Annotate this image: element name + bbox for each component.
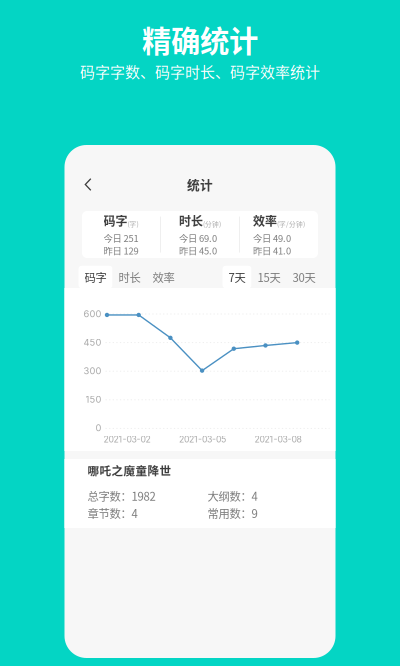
button[interactable]: 15天 (251, 266, 286, 288)
staticText: 时长 (179, 212, 203, 229)
staticText: 2021-03-05 (179, 434, 226, 445)
staticText: 30天 (292, 269, 315, 285)
staticText: 今日 49.0 (253, 231, 291, 245)
staticText: 2021-03-08 (254, 434, 301, 445)
staticText: 码字 (84, 269, 106, 285)
staticText: 哪吒之魔童降世 (87, 462, 171, 478)
staticText: (字) (127, 219, 138, 229)
staticText: 昨日 129 (103, 244, 138, 257)
staticText: 统计 (187, 175, 213, 193)
staticText: 昨日 41.0 (253, 244, 291, 257)
button[interactable]: Back (64, 154, 105, 198)
button[interactable]: 码字 (78, 266, 112, 288)
staticText: 效率 (253, 212, 277, 229)
staticText: 600 (83, 308, 101, 320)
staticText: 300 (83, 365, 101, 377)
staticText: 码字 (103, 212, 127, 229)
button[interactable]: 7天 (222, 266, 251, 288)
staticText: 450 (83, 337, 101, 348)
staticText: (字/分钟) (277, 219, 305, 229)
staticText: 常用数：9 (207, 505, 257, 521)
staticText: 2021-03-02 (103, 434, 150, 445)
staticText: 章节数：4 (87, 505, 137, 521)
staticText: 15天 (257, 269, 280, 285)
button[interactable]: 30天 (286, 266, 321, 288)
staticText: 精确统计 (142, 18, 258, 60)
staticText: 0 (95, 422, 101, 434)
staticText: 今日 69.0 (179, 231, 217, 245)
staticText: 总字数：1982 (87, 487, 155, 504)
staticText: 150 (85, 394, 101, 405)
staticText: 今日 251 (103, 231, 138, 245)
staticText: 效率 (152, 269, 174, 285)
staticText: 大纲数：4 (207, 487, 257, 504)
staticText: 7天 (228, 269, 245, 285)
button[interactable]: 效率 (146, 266, 180, 288)
staticText: 昨日 45.0 (179, 244, 217, 257)
button[interactable]: 时长 (112, 266, 146, 288)
staticText: 码字字数、码字时长、码字效率统计 (80, 60, 320, 82)
staticText: 时长 (118, 269, 140, 285)
staticText: (分钟) (203, 219, 221, 229)
